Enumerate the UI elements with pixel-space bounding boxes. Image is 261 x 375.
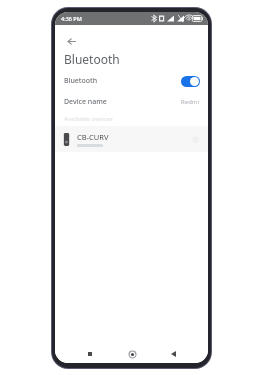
staticText: Device name bbox=[64, 97, 107, 107]
button[interactable]: Bluetooth bbox=[55, 70, 208, 92]
staticText: Available devices bbox=[64, 115, 113, 123]
staticText: Redmi bbox=[181, 98, 199, 106]
staticText: CB-CURV bbox=[77, 132, 109, 142]
button[interactable]: Recent apps bbox=[83, 347, 97, 361]
button[interactable]: Bluetooth on bbox=[181, 76, 200, 87]
button[interactable]: Navigate up bbox=[62, 32, 80, 50]
button[interactable]: Device name bbox=[55, 92, 208, 112]
button[interactable]: Device settings bbox=[190, 134, 200, 144]
button[interactable]: Home bbox=[125, 347, 139, 361]
button[interactable]: CB-CURV bbox=[55, 126, 208, 152]
staticText: Bluetooth bbox=[64, 51, 120, 67]
button[interactable]: Back bbox=[166, 347, 180, 361]
staticText: 4:36 PM bbox=[61, 15, 82, 22]
staticText: Bluetooth bbox=[64, 76, 98, 86]
